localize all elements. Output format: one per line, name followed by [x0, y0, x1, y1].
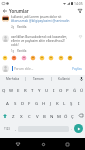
button[interactable]: K — [54, 96, 61, 109]
button[interactable]: Emoji — [2, 55, 8, 61]
button[interactable]: Ü — [78, 83, 85, 96]
button[interactable]: W — [8, 83, 15, 96]
button[interactable]: M — [55, 109, 62, 122]
button[interactable]: Ğ — [71, 83, 78, 96]
button[interactable]: Recents — [61, 138, 73, 150]
button[interactable]: F — [26, 96, 33, 109]
button[interactable]: Tamam — [26, 75, 51, 83]
staticText: 2g — [11, 25, 15, 29]
button[interactable]: Home — [37, 138, 49, 150]
button[interactable]: O — [57, 83, 64, 96]
button[interactable]: Paylas — [71, 65, 83, 73]
staticText: X — [20, 113, 23, 119]
button[interactable]: V — [33, 109, 41, 122]
button[interactable]: Merhaba — [0, 75, 25, 83]
staticText: ?123 — [4, 127, 10, 131]
staticText: E — [17, 87, 20, 93]
button[interactable]: E — [15, 83, 22, 96]
button[interactable]: kullanici_adi Lorem ipsum dolor sit — [0, 15, 85, 29]
button[interactable]: B — [41, 109, 48, 122]
staticText: Q — [2, 87, 6, 93]
button[interactable]: ozelikllan Bunuabcdend cok kazandim, — [0, 35, 85, 53]
staticText: R — [24, 87, 27, 93]
button[interactable]: Like — [77, 35, 83, 41]
button[interactable]: Emoji — [11, 55, 17, 61]
staticText: Merhaba — [6, 77, 20, 81]
button[interactable]: Back — [0, 7, 9, 14]
button[interactable]: U — [43, 83, 50, 96]
staticText: D — [21, 100, 25, 106]
button[interactable]: X — [17, 109, 25, 122]
staticText: F — [28, 100, 31, 106]
staticText: Kullanici — [58, 77, 71, 81]
button[interactable]: Send — [74, 124, 83, 133]
button[interactable]: ?123 — [1, 122, 13, 135]
staticText: G — [35, 100, 39, 106]
button[interactable]: Back — [12, 138, 24, 150]
button[interactable]: A — [3, 96, 11, 109]
button[interactable]: L — [61, 96, 68, 109]
button[interactable]: Z — [9, 109, 17, 122]
staticText: K — [56, 100, 59, 106]
staticText: W — [9, 87, 14, 93]
button[interactable]: S — [11, 96, 19, 109]
staticText: O — [59, 87, 63, 93]
staticText: , — [15, 126, 16, 131]
staticText: P — [66, 87, 69, 93]
button[interactable]: Shift — [0, 109, 9, 122]
staticText: Ü — [80, 87, 84, 93]
button[interactable]: G — [33, 96, 40, 109]
staticText: L — [63, 100, 66, 106]
staticText: Ö — [64, 113, 68, 119]
button[interactable]: Emoji — [48, 55, 54, 61]
button[interactable]: H — [40, 96, 47, 109]
staticText: Ş — [70, 100, 73, 106]
button[interactable]: C — [25, 109, 33, 122]
button[interactable]: D — [19, 96, 26, 109]
button[interactable]: R — [22, 83, 29, 96]
staticText: B — [43, 113, 46, 119]
staticText: A — [6, 100, 9, 106]
button[interactable]: , — [13, 122, 18, 135]
staticText: Y — [38, 87, 41, 93]
button[interactable]: J — [47, 96, 54, 109]
button[interactable]: P — [64, 83, 71, 96]
button[interactable]: Emoji — [39, 55, 45, 61]
staticText: J — [50, 100, 52, 106]
button[interactable]: Backspace — [76, 109, 85, 122]
button[interactable]: I — [75, 96, 82, 109]
staticText: cokk! — [11, 43, 19, 47]
staticText: N — [50, 113, 54, 119]
button[interactable]: Emoji — [30, 55, 36, 61]
button[interactable]: Q — [0, 83, 8, 96]
staticText: 1g — [11, 49, 15, 53]
staticText: C — [28, 113, 31, 119]
button[interactable]: Yanitla — [17, 49, 27, 53]
button[interactable]: Yanitla — [17, 25, 27, 29]
staticText: M — [57, 113, 61, 119]
button[interactable]: Ş — [68, 96, 75, 109]
button[interactable]: N — [48, 109, 55, 122]
button[interactable]: T — [29, 83, 36, 96]
staticText: Ğ — [73, 87, 77, 93]
staticText: Tamam — [33, 77, 44, 81]
button[interactable]: Y — [36, 83, 43, 96]
button[interactable]: Ç — [69, 109, 76, 122]
staticText: #konusmak @bilgipaylasimi @seninadin — [11, 19, 70, 23]
staticText: Ç — [71, 113, 74, 119]
button[interactable]: Emoji — [21, 55, 27, 61]
button[interactable]: Emoji — [58, 55, 64, 61]
button[interactable]: Filter — [75, 7, 85, 14]
button[interactable]: Kullanici — [52, 75, 77, 83]
staticText: U — [45, 87, 49, 93]
staticText: V — [36, 113, 39, 119]
button[interactable]: Emoji — [67, 55, 73, 61]
button[interactable]: Ö — [62, 109, 69, 122]
staticText: S — [14, 100, 17, 106]
button[interactable]: Voice input — [77, 75, 85, 83]
button[interactable]: I — [50, 83, 57, 96]
staticText: ozelikllan Bunuabcdend cok kazandim, — [11, 35, 68, 39]
